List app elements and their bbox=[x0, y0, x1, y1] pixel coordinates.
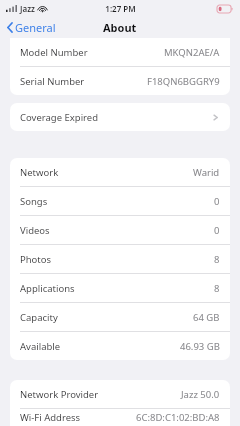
button[interactable]: Model Number bbox=[10, 38, 230, 67]
button[interactable]: Wi-Fi Address bbox=[10, 409, 230, 426]
staticText: 8 bbox=[214, 282, 220, 295]
staticText: Photos bbox=[20, 253, 52, 266]
staticText: 1:27 PM bbox=[105, 3, 136, 14]
button[interactable]: Network bbox=[10, 158, 230, 187]
button[interactable]: Songs bbox=[10, 187, 230, 216]
button[interactable]: Capacity bbox=[10, 303, 230, 332]
staticText: Capacity bbox=[20, 311, 58, 324]
staticText: Wi-Fi Address bbox=[20, 411, 81, 424]
staticText: MKQN2AE/A bbox=[164, 46, 220, 59]
button[interactable]: Applications bbox=[10, 274, 230, 303]
staticText: Jazz 50.0 bbox=[181, 388, 220, 401]
staticText: F18QN6BGGRY9 bbox=[147, 75, 220, 88]
staticText: Jazz bbox=[20, 3, 35, 14]
staticText: 0 bbox=[214, 224, 220, 237]
button[interactable]: Network Provider bbox=[10, 380, 230, 409]
staticText: General bbox=[15, 20, 56, 35]
staticText: 0 bbox=[214, 195, 220, 208]
staticText: 46.93 GB bbox=[180, 340, 220, 353]
staticText: 6C:8D:C1:02:BD:A8 bbox=[136, 411, 220, 424]
staticText: Coverage Expired bbox=[20, 111, 99, 124]
staticText: Available bbox=[20, 340, 61, 353]
button[interactable]: Available bbox=[10, 332, 230, 360]
button[interactable]: Serial Number bbox=[10, 67, 230, 95]
staticText: Applications bbox=[20, 282, 75, 295]
staticText: Network bbox=[20, 166, 59, 179]
button[interactable]: General bbox=[5, 18, 58, 37]
staticText: Warid bbox=[193, 166, 220, 179]
staticText: 8 bbox=[214, 253, 220, 266]
staticText: 64 GB bbox=[193, 311, 220, 324]
button[interactable]: Coverage Expired bbox=[10, 103, 230, 131]
button[interactable]: Videos bbox=[10, 216, 230, 245]
button[interactable]: Photos bbox=[10, 245, 230, 274]
staticText: Model Number bbox=[20, 46, 88, 59]
staticText: About bbox=[103, 20, 137, 35]
staticText: Songs bbox=[20, 195, 48, 208]
staticText: Network Provider bbox=[20, 388, 99, 401]
staticText: Serial Number bbox=[20, 75, 85, 88]
staticText: Videos bbox=[20, 224, 50, 237]
